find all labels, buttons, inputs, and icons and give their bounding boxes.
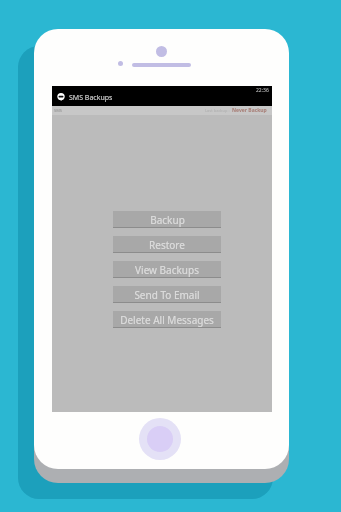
staticText: Backup <box>150 213 185 227</box>
button[interactable]: Delete All Messages <box>113 311 221 328</box>
staticText: Never Backup <box>232 107 267 114</box>
staticText: View Backups <box>135 263 199 277</box>
staticText: Restore <box>149 238 185 252</box>
staticText: SMS Backups <box>69 93 113 103</box>
staticText: 22:36 <box>256 87 269 94</box>
button[interactable]: Restore <box>113 236 221 253</box>
staticText: Last backup : <box>205 108 230 113</box>
staticText: Delete All Messages <box>120 313 214 327</box>
button[interactable]: Home <box>139 418 181 460</box>
button[interactable]: View Backups <box>113 261 221 278</box>
staticText: SMS <box>54 108 63 113</box>
button[interactable]: Backup <box>113 211 221 228</box>
button[interactable]: Send To Email <box>113 286 221 303</box>
staticText: Send To Email <box>134 288 200 302</box>
